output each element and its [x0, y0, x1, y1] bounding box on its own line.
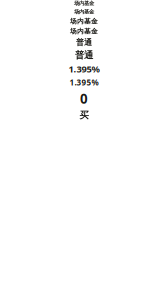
staticText: 普通 — [75, 49, 93, 61]
staticText: 0 — [80, 90, 88, 107]
staticText: 普通 — [76, 37, 92, 47]
staticText: 场内基金 — [74, 9, 94, 15]
staticText: 场内基金 — [70, 17, 98, 25]
staticText: 场内基金 — [70, 27, 98, 35]
staticText: 买 — [79, 109, 88, 121]
staticText: 1.395% — [68, 63, 99, 75]
staticText: 1.395% — [69, 77, 98, 88]
staticText: 场内基金 — [74, 0, 94, 7]
